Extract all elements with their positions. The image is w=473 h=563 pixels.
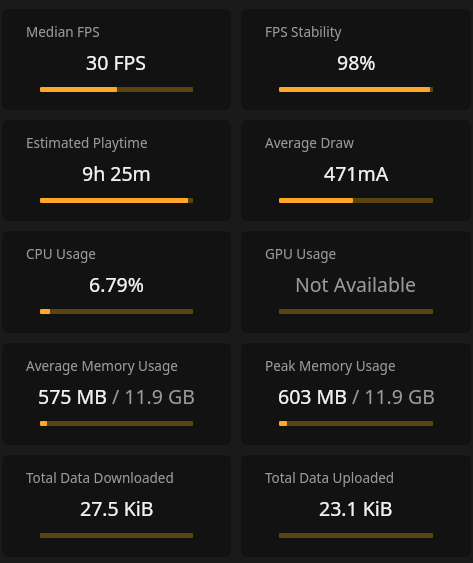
staticText: Average Memory Usage <box>26 357 178 375</box>
button[interactable]: Total Data Uploaded <box>241 455 471 557</box>
button[interactable]: GPU Usage <box>241 231 471 333</box>
staticText: Total Data Downloaded <box>26 469 174 487</box>
staticText: Peak Memory Usage <box>265 357 396 375</box>
staticText: 603 MB / 11.9 GB <box>278 383 435 410</box>
staticText: Estimated Playtime <box>26 134 148 152</box>
staticText: 98% <box>337 49 376 76</box>
staticText: 30 FPS <box>86 49 147 76</box>
staticText: 23.1 KiB <box>319 495 393 522</box>
button[interactable]: Average Memory Usage <box>2 343 231 445</box>
staticText: Median FPS <box>26 23 100 41</box>
button[interactable]: Average Draw <box>241 120 471 221</box>
button[interactable]: FPS Stability <box>241 9 471 110</box>
staticText: FPS Stability <box>265 23 342 41</box>
staticText: 9h 25m <box>82 160 151 187</box>
staticText: Total Data Uploaded <box>265 469 395 487</box>
button[interactable]: Median FPS <box>2 9 231 110</box>
button[interactable]: CPU Usage <box>2 231 231 333</box>
button[interactable]: Total Data Downloaded <box>2 455 231 557</box>
button[interactable]: Peak Memory Usage <box>241 343 471 445</box>
staticText: GPU Usage <box>265 245 337 263</box>
staticText: 6.79% <box>89 271 144 298</box>
staticText: CPU Usage <box>26 245 96 263</box>
staticText: Not Available <box>295 271 417 298</box>
staticText: 471mA <box>324 160 389 187</box>
staticText: Average Draw <box>265 134 354 152</box>
button[interactable]: Estimated Playtime <box>2 120 231 221</box>
staticText: 27.5 KiB <box>80 495 154 522</box>
staticText: 575 MB / 11.9 GB <box>38 383 195 410</box>
